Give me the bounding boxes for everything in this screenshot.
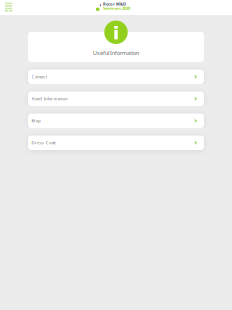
button[interactable]: Hotel Information xyxy=(28,91,204,106)
staticText: Recor M&D xyxy=(103,1,126,6)
staticText: Map xyxy=(32,118,40,123)
staticText: Contact xyxy=(32,74,47,79)
staticText: Hotel Information xyxy=(32,96,67,101)
staticText: Useful Information xyxy=(93,49,139,56)
button[interactable]: Contact xyxy=(28,69,204,84)
button[interactable]: Menu xyxy=(0,0,16,15)
staticText: Seminars 2020 xyxy=(103,5,130,11)
button[interactable]: Map xyxy=(28,113,204,128)
staticText: Dress Code xyxy=(32,140,56,145)
button[interactable]: Dress Code xyxy=(28,135,204,150)
